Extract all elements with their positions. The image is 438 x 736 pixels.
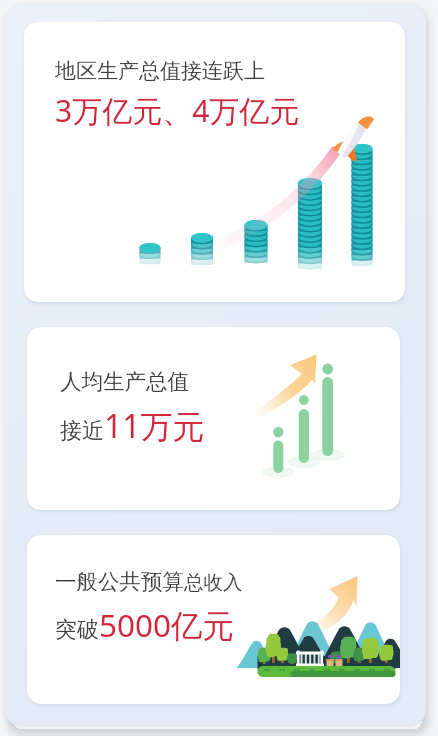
staticText: 突破5000亿元: [55, 603, 235, 646]
button[interactable]: 一般公共预算总收入: [27, 535, 400, 704]
staticText: 人均生产总值: [60, 368, 189, 395]
button[interactable]: 地区生产总值接连跃上: [24, 22, 405, 302]
staticText: 一般公共预算总收入: [55, 568, 243, 595]
button[interactable]: 人均生产总值: [27, 327, 400, 510]
staticText: 3万亿元、4万亿元: [55, 90, 300, 131]
staticText: 地区生产总值接连跃上: [55, 58, 265, 84]
staticText: 接近11万元: [60, 404, 205, 448]
